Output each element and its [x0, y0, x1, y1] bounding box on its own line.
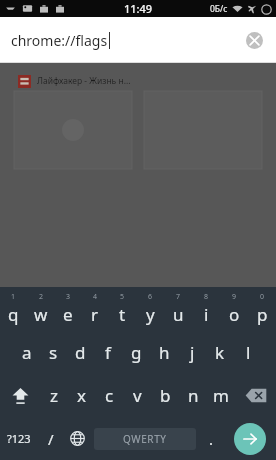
- staticText: q: [8, 303, 19, 326]
- button[interactable]: s: [40, 331, 67, 374]
- button[interactable]: Backspace: [235, 374, 276, 417]
- button[interactable]: 9: [220, 287, 248, 331]
- button[interactable]: /: [38, 417, 63, 460]
- button[interactable]: 8: [192, 287, 220, 331]
- staticText: i: [204, 303, 209, 326]
- staticText: z: [50, 384, 58, 407]
- staticText: chrome://flags: [11, 31, 108, 50]
- button[interactable]: 7: [164, 287, 192, 331]
- button[interactable]: l: [234, 331, 262, 374]
- button[interactable]: 5: [108, 287, 136, 331]
- button[interactable]: x: [67, 374, 95, 417]
- staticText: p: [257, 303, 268, 326]
- button[interactable]: 3: [54, 287, 81, 331]
- staticText: 4: [93, 292, 98, 302]
- button[interactable]: 1: [0, 287, 27, 331]
- staticText: w: [34, 303, 48, 326]
- staticText: 0Б/с: [210, 3, 228, 15]
- button[interactable]: c: [95, 374, 123, 417]
- staticText: m: [213, 384, 229, 407]
- staticText: h: [159, 341, 170, 364]
- button[interactable]: chrome://flags: [0, 17, 276, 63]
- button[interactable]: 6: [136, 287, 164, 331]
- staticText: j: [190, 341, 195, 364]
- staticText: .: [209, 429, 214, 449]
- button[interactable]: Clear text: [240, 26, 268, 54]
- staticText: 6: [148, 292, 153, 302]
- button[interactable]: m: [207, 374, 235, 417]
- staticText: QWERTY: [123, 432, 167, 446]
- staticText: 7: [176, 292, 181, 302]
- button[interactable]: z: [40, 374, 67, 417]
- staticText: 5: [120, 292, 125, 302]
- button[interactable]: d: [67, 331, 94, 374]
- staticText: y: [146, 303, 155, 326]
- staticText: Лайфхакер - Жизнь н...: [37, 75, 131, 87]
- staticText: e: [63, 303, 73, 326]
- staticText: k: [215, 341, 225, 364]
- staticText: 11:49: [124, 1, 153, 16]
- staticText: r: [91, 303, 99, 326]
- button[interactable]: k: [206, 331, 234, 374]
- staticText: t: [119, 303, 126, 326]
- staticText: g: [131, 341, 142, 364]
- staticText: c: [105, 384, 114, 407]
- staticText: u: [173, 303, 184, 326]
- staticText: n: [188, 384, 199, 407]
- button[interactable]: Go: [224, 417, 276, 460]
- button[interactable]: 0: [248, 287, 276, 331]
- staticText: f: [105, 341, 111, 364]
- staticText: 9: [232, 292, 237, 302]
- button[interactable]: g: [122, 331, 150, 374]
- staticText: l: [246, 341, 251, 364]
- staticText: d: [75, 341, 86, 364]
- staticText: v: [133, 384, 142, 407]
- button[interactable]: n: [179, 374, 207, 417]
- staticText: 1: [11, 292, 16, 302]
- button[interactable]: Change keyboard language: [63, 417, 91, 460]
- button[interactable]: QWERTY: [94, 428, 196, 450]
- staticText: 3: [66, 292, 71, 302]
- button[interactable]: f: [94, 331, 122, 374]
- button[interactable]: h: [150, 331, 178, 374]
- staticText: a: [22, 341, 32, 364]
- button[interactable]: v: [123, 374, 151, 417]
- staticText: 0: [260, 292, 265, 302]
- staticText: 2: [39, 292, 44, 302]
- staticText: s: [49, 341, 58, 364]
- staticText: 8: [204, 292, 209, 302]
- button[interactable]: b: [151, 374, 179, 417]
- button[interactable]: ?123: [0, 417, 38, 460]
- button[interactable]: .: [199, 417, 224, 460]
- button[interactable]: Лайфхакер - Жизнь н...: [14, 71, 132, 169]
- button[interactable]: a: [13, 331, 40, 374]
- button[interactable]: Shift: [0, 374, 40, 417]
- staticText: x: [77, 384, 86, 407]
- staticText: b: [160, 384, 171, 407]
- staticText: ?123: [7, 431, 31, 446]
- button[interactable]: j: [178, 331, 206, 374]
- staticText: o: [229, 303, 240, 326]
- button[interactable]: 2: [27, 287, 54, 331]
- button[interactable]: 4: [81, 287, 108, 331]
- staticText: /: [48, 429, 54, 449]
